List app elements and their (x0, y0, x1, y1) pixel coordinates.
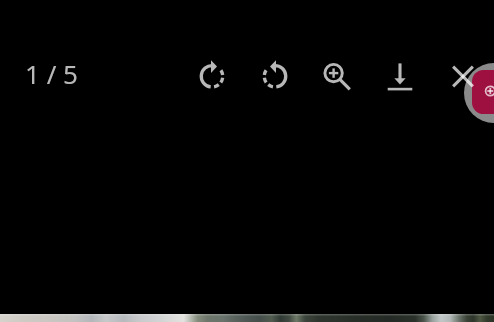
button[interactable]: Rotate right (191, 55, 233, 97)
staticText: 1 / 5 (25, 56, 78, 91)
button[interactable]: Add to album (464, 63, 494, 123)
button[interactable]: 1 / 5 (16, 54, 90, 92)
button[interactable]: Download (379, 55, 421, 97)
button[interactable]: Rotate left (254, 55, 296, 97)
button[interactable]: Zoom in (316, 55, 358, 97)
button[interactable]: Close (442, 55, 484, 97)
